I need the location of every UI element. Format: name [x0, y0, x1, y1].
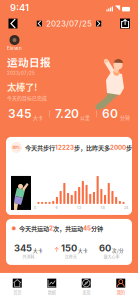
staticText: 80% [12, 145, 20, 150]
staticText: 24 [124, 205, 128, 210]
staticText: 步 [126, 143, 132, 152]
staticText: 大卡 [33, 247, 43, 254]
staticText: 45 [83, 225, 91, 232]
staticText: 2000 [110, 144, 126, 151]
staticText: Eleven [7, 45, 22, 51]
button[interactable]: Share [118, 16, 132, 30]
staticText: 我的 [117, 289, 125, 295]
staticText: 2 [49, 225, 53, 232]
button[interactable]: 首页 [0, 273, 34, 300]
staticText: 150 [61, 242, 77, 254]
staticText: 次/分 [112, 247, 124, 254]
staticText: 345 [8, 106, 32, 121]
staticText: 次，共运动 [53, 224, 83, 233]
staticText: 大卡 [78, 247, 88, 254]
staticText: ✹ [11, 224, 17, 232]
staticText: 分钟 [91, 224, 103, 233]
staticText: 分钟 [120, 114, 130, 121]
staticText: 太棒了! [7, 80, 37, 93]
button[interactable]: Back [6, 16, 20, 30]
staticText: ◥ [115, 4, 120, 11]
staticText: 0 [34, 205, 36, 210]
staticText: 60 [99, 242, 111, 254]
staticText: 今天共运动 [19, 224, 49, 233]
staticText: 首页 [13, 289, 21, 295]
staticText: 公里 [80, 114, 90, 121]
staticText: 7.20 [55, 106, 79, 121]
staticText: 12 [77, 205, 81, 210]
staticText: 18 [100, 205, 104, 210]
staticText: 2023/07/25 [7, 70, 35, 76]
button[interactable]: 发现 [69, 273, 103, 300]
staticText: 运动日报 [7, 54, 51, 69]
staticText: 最大心率 [103, 254, 119, 260]
button[interactable]: Eleven [7, 35, 22, 51]
staticText: ↑ [54, 246, 60, 254]
button[interactable]: 数据 [34, 273, 69, 300]
staticText: 12223 [55, 144, 74, 151]
button[interactable]: 我的 [103, 273, 138, 300]
staticText: 6 [55, 205, 57, 210]
staticText: 60 [102, 106, 118, 121]
staticText: 数据 [48, 289, 56, 295]
staticText: 345 [14, 242, 32, 254]
staticText: 比昨天 [65, 254, 77, 260]
staticText: 今天共步行 [25, 143, 55, 152]
staticText: 今天的目标已完成 [7, 94, 47, 101]
staticText: 共消耗 [22, 254, 34, 260]
staticText: 发现 [82, 289, 90, 295]
staticText: 步，比昨天多 [74, 143, 110, 152]
staticText: 9:41 [10, 2, 29, 13]
staticText: 大卡 [33, 114, 43, 121]
staticText: 2023/07/25 [46, 19, 92, 28]
